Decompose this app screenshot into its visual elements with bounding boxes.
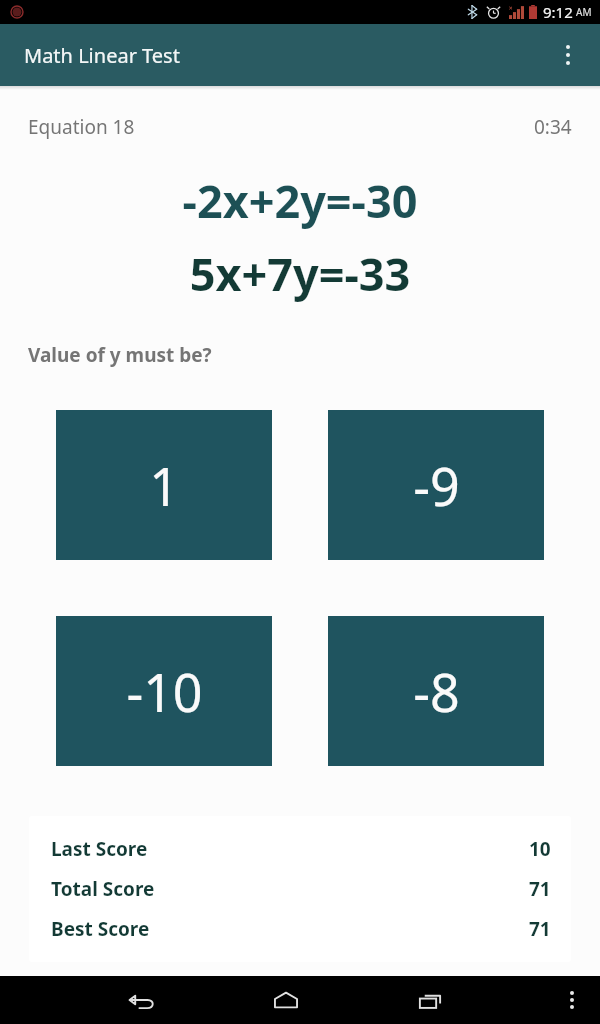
- staticText: -8: [413, 656, 460, 727]
- staticText: -10: [126, 656, 203, 727]
- staticText: -2x+2y=-30: [0, 170, 600, 231]
- button[interactable]: -10: [56, 616, 272, 766]
- button[interactable]: -8: [328, 616, 544, 766]
- button[interactable]: More options: [544, 31, 592, 79]
- staticText: 71: [529, 916, 551, 942]
- button[interactable]: Recent apps: [406, 976, 454, 1024]
- staticText: 5x+7y=-33: [0, 243, 600, 304]
- button[interactable]: Back: [118, 976, 166, 1024]
- staticText: Last Score: [51, 836, 148, 862]
- staticText: 9:12: [543, 2, 573, 22]
- staticText: Math Linear Test: [24, 42, 180, 69]
- staticText: Total Score: [51, 876, 155, 902]
- button[interactable]: Home: [262, 976, 310, 1024]
- staticText: -9: [413, 450, 460, 521]
- button[interactable]: -9: [328, 410, 544, 560]
- staticText: 1: [149, 450, 179, 521]
- staticText: Best Score: [51, 916, 150, 942]
- staticText: Equation 18: [28, 114, 135, 140]
- staticText: 10: [529, 836, 551, 862]
- staticText: 71: [529, 876, 551, 902]
- staticText: AM: [576, 5, 592, 19]
- staticText: Value of y must be?: [28, 342, 212, 368]
- staticText: 0:34: [534, 114, 572, 140]
- button[interactable]: Last Score: [29, 816, 571, 962]
- button[interactable]: 1: [56, 410, 272, 560]
- button[interactable]: Menu: [550, 978, 594, 1022]
